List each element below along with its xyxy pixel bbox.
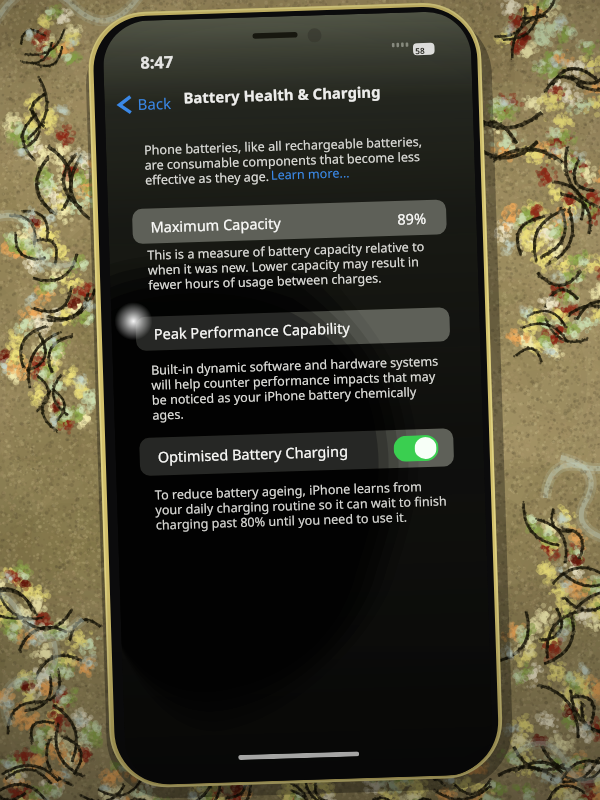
button[interactable]: Peak Performance Capability [135,307,450,351]
staticText: Peak Performance Capability [153,317,350,343]
staticText: Maximum Capacity [150,212,282,237]
button[interactable]: Maximum Capacity [132,199,447,244]
staticText: Phone batteries, like all rechargeable b… [144,133,424,189]
staticText: 58 [415,45,425,57]
staticText: Built-in dynamic software and hardware s… [151,353,440,424]
staticText: 8:47 [140,50,174,73]
staticText: Optimised Battery Charging [157,440,349,466]
button[interactable]: Optimised Battery Charging [139,428,454,476]
staticText: To reduce battery ageing, iPhone learns … [155,477,448,533]
button[interactable]: Back [118,93,172,115]
staticText: This is a measure of battery capacity re… [147,238,426,294]
button[interactable]: Learn more... [271,164,350,184]
staticText: Back [137,93,172,114]
other: Optimised Battery Charging toggle [393,435,439,462]
staticText: Learn more... [271,164,350,184]
staticText: 89% [397,208,427,229]
staticText: Battery Health & Charging [183,81,382,107]
